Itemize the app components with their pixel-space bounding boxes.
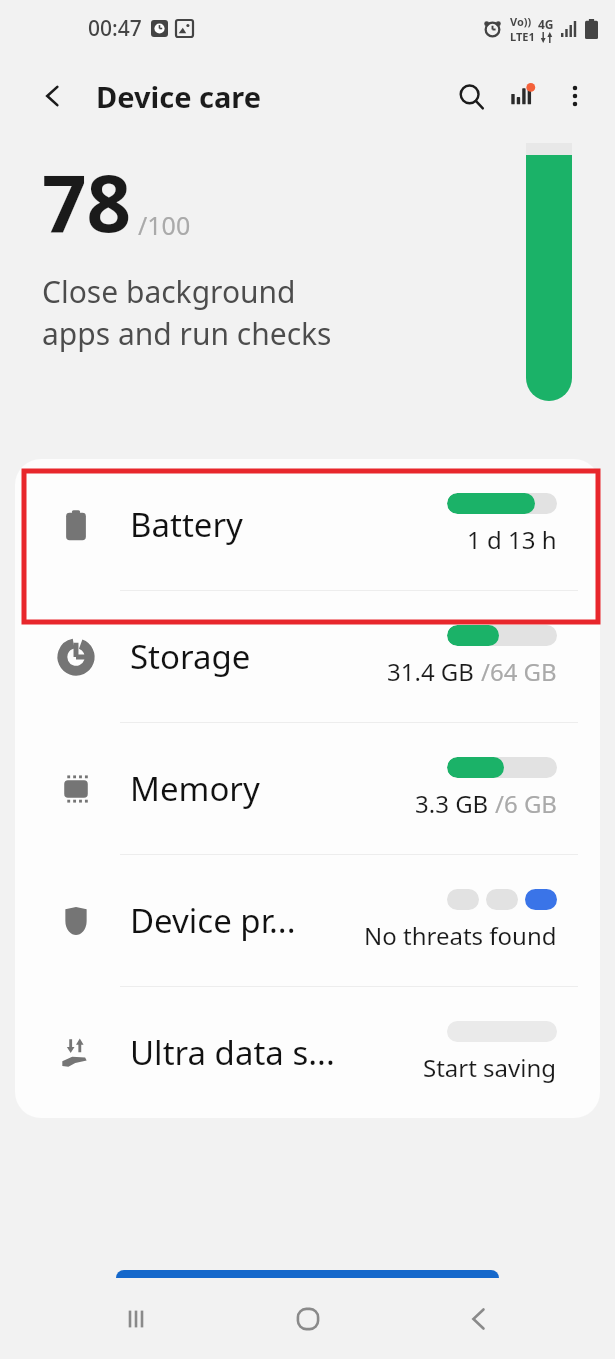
button[interactable]: Device pr... <box>15 855 600 986</box>
staticText: Memory <box>130 766 260 811</box>
staticText: Device pr... <box>130 898 296 943</box>
staticText: 3.3 GB <box>415 787 495 820</box>
button[interactable]: Storage <box>15 591 600 722</box>
staticText: Storage <box>130 634 251 679</box>
staticText: Start saving <box>423 1051 557 1084</box>
button[interactable]: Ultra data s... <box>15 987 600 1118</box>
staticText: Vo)) <box>510 14 532 29</box>
staticText: /6 GB <box>495 787 557 820</box>
button[interactable]: Network statistics <box>497 70 549 122</box>
button[interactable]: Recent apps <box>101 1284 171 1354</box>
button[interactable] <box>116 1270 499 1278</box>
button[interactable]: More options <box>549 70 601 122</box>
button[interactable]: Back <box>444 1284 514 1354</box>
staticText: LTE1 <box>510 29 535 44</box>
staticText: 78 <box>42 149 132 255</box>
staticText: 1 d 13 h <box>467 523 557 556</box>
staticText: 00:47 <box>88 14 142 43</box>
staticText: /100 <box>138 208 191 242</box>
button[interactable]: Battery <box>15 459 600 590</box>
button[interactable]: Back <box>30 73 76 119</box>
staticText: Battery <box>130 502 243 547</box>
staticText: /64 GB <box>481 655 557 688</box>
staticText: Close background apps and run checks <box>42 271 332 354</box>
staticText: 4G <box>538 16 554 32</box>
button[interactable]: Memory <box>15 723 600 854</box>
button[interactable]: Home <box>273 1284 343 1354</box>
staticText: Device care <box>96 77 262 116</box>
button[interactable]: Search <box>445 70 497 122</box>
staticText: No threats found <box>364 919 557 952</box>
staticText: Ultra data s... <box>130 1030 335 1075</box>
staticText: 31.4 GB <box>387 655 481 688</box>
